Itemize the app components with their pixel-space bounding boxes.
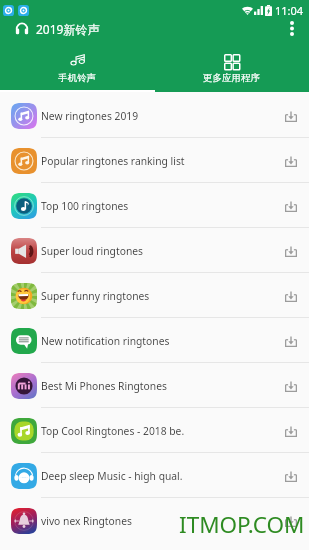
button[interactable]: New notification ringtones [0, 318, 309, 363]
button[interactable]: Download [276, 326, 306, 356]
staticText: Super funny ringtones [41, 289, 150, 303]
staticText: Deep sleep Music - high qual. [41, 469, 183, 483]
button[interactable]: Download [276, 506, 306, 536]
button[interactable]: Download [276, 191, 306, 221]
staticText: Top Cool Ringtones - 2018 be. [41, 424, 185, 438]
button[interactable]: Download [276, 461, 306, 491]
button[interactable]: Best Mi Phones Ringtones [0, 363, 309, 408]
staticText: New ringtones 2019 [41, 109, 139, 123]
button[interactable]: More options [275, 20, 309, 37]
button[interactable]: Popular ringtones ranking list [0, 138, 309, 183]
staticText: Best Mi Phones Ringtones [41, 379, 167, 393]
button[interactable]: Download [276, 236, 306, 266]
button[interactable]: 手机铃声 [0, 37, 154, 92]
button[interactable]: Deep sleep Music - high qual. [0, 453, 309, 498]
staticText: 更多应用程序 [203, 72, 260, 84]
button[interactable]: New ringtones 2019 [0, 93, 309, 138]
staticText: Super loud ringtones [41, 244, 144, 258]
staticText: Popular ringtones ranking list [41, 154, 185, 168]
button[interactable]: 更多应用程序 [154, 37, 309, 92]
staticText: 2019新铃声 [36, 21, 100, 37]
staticText: New notification ringtones [41, 334, 170, 348]
staticText: 手机铃声 [58, 72, 96, 84]
button[interactable]: Super funny ringtones [0, 273, 309, 318]
button[interactable]: Download [276, 416, 306, 446]
staticText: ITMOP.COM [179, 509, 305, 540]
staticText: Top 100 ringtones [41, 199, 129, 213]
button[interactable]: Top Cool Ringtones - 2018 be. [0, 408, 309, 453]
staticText: vivo nex Ringtones [41, 514, 132, 528]
button[interactable]: Download [276, 146, 306, 176]
button[interactable]: Download [276, 371, 306, 401]
button[interactable]: Download [276, 281, 306, 311]
button[interactable]: vivo nex Ringtones [0, 498, 309, 543]
staticText: 11:04 [275, 3, 304, 18]
button[interactable]: Top 100 ringtones [0, 183, 309, 228]
button[interactable]: Download [276, 101, 306, 131]
button[interactable]: Super loud ringtones [0, 228, 309, 273]
